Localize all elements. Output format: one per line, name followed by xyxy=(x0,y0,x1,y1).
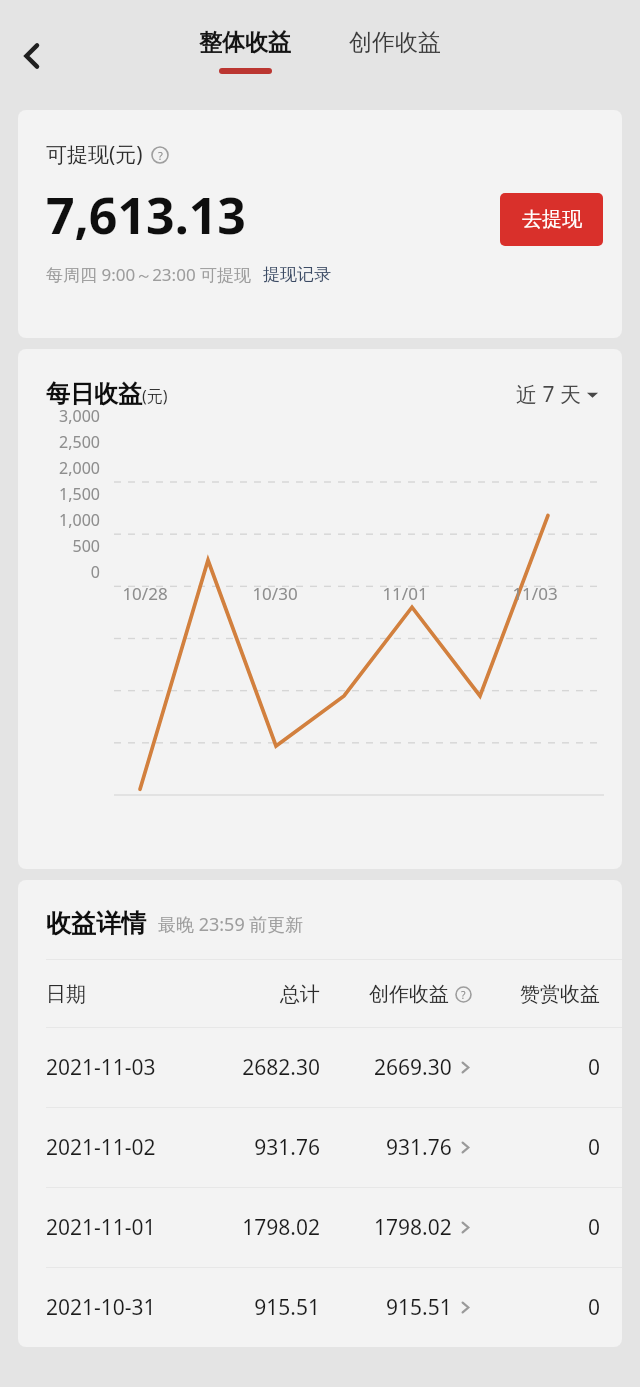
staticText: 931.76 xyxy=(386,1133,452,1162)
button[interactable]: Help xyxy=(151,146,169,164)
staticText: 2021-11-02 xyxy=(46,1133,203,1162)
staticText: 每日收益 xyxy=(46,379,142,409)
staticText: ? xyxy=(461,988,466,1002)
staticText: 0 xyxy=(472,1133,600,1162)
button[interactable]: 2021-11-02 xyxy=(18,1108,622,1187)
staticText: 1798.02 xyxy=(374,1213,452,1242)
button[interactable]: 整体收益 xyxy=(189,28,301,74)
button[interactable]: Back xyxy=(4,28,60,84)
staticText: (元) xyxy=(142,385,168,407)
staticText: ? xyxy=(158,148,163,163)
staticText: 915.51 xyxy=(203,1293,320,1322)
staticText: 1798.02 xyxy=(203,1213,320,1242)
button[interactable]: 提现记录 xyxy=(263,264,331,285)
button[interactable]: 近 7 天 xyxy=(516,380,598,409)
staticText: 可提现(元) xyxy=(46,140,143,169)
staticText: 3,000 xyxy=(26,405,100,427)
staticText: 7,613.13 xyxy=(46,181,246,249)
button[interactable]: 创作收益 xyxy=(339,28,451,57)
staticText: 日期 xyxy=(46,982,203,1007)
staticText: 2,500 xyxy=(26,431,100,453)
staticText: 0 xyxy=(472,1053,600,1082)
staticText: 10/30 xyxy=(210,582,340,605)
button[interactable]: 2021-10-31 xyxy=(18,1268,622,1347)
staticText: 收益详情 xyxy=(46,908,146,939)
button[interactable]: 2021-11-03 xyxy=(18,1028,622,1107)
staticText: 2,000 xyxy=(26,457,100,479)
staticText: 11/01 xyxy=(340,582,470,605)
staticText: 500 xyxy=(26,535,100,557)
button[interactable]: 2021-11-01 xyxy=(18,1188,622,1267)
staticText: 0 xyxy=(472,1293,600,1322)
staticText: 2021-11-01 xyxy=(46,1213,203,1242)
staticText: 915.51 xyxy=(386,1293,452,1322)
staticText: 创作收益 xyxy=(369,982,449,1007)
button[interactable]: 创作收益 xyxy=(320,982,472,1007)
staticText: 2021-10-31 xyxy=(46,1293,203,1322)
button[interactable]: 去提现 xyxy=(500,193,603,246)
staticText: 总计 xyxy=(203,982,320,1007)
staticText: 0 xyxy=(472,1213,600,1242)
staticText: 2021-11-03 xyxy=(46,1053,203,1082)
staticText: 赞赏收益 xyxy=(472,982,600,1007)
staticText: 0 xyxy=(26,561,100,583)
staticText: 1,000 xyxy=(26,509,100,531)
staticText: 整体收益 xyxy=(199,28,291,57)
staticText: 2682.30 xyxy=(203,1053,320,1082)
staticText: 2669.30 xyxy=(374,1053,452,1082)
staticText: 近 7 天 xyxy=(516,380,581,409)
staticText: 931.76 xyxy=(203,1133,320,1162)
staticText: 1,500 xyxy=(26,483,100,505)
staticText: 每周四 9:00～23:00 可提现 xyxy=(46,263,252,286)
staticText: 创作收益 xyxy=(349,28,441,57)
staticText: 提现记录 xyxy=(263,264,331,285)
staticText: 去提现 xyxy=(522,207,582,232)
staticText: 10/28 xyxy=(80,582,210,605)
staticText: 11/03 xyxy=(470,582,600,605)
staticText: 最晚 23:59 前更新 xyxy=(158,912,304,937)
